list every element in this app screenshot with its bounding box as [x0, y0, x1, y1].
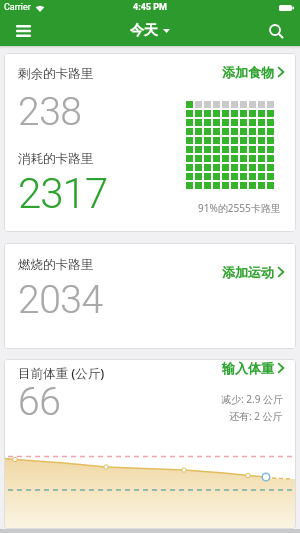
staticText: 今天	[130, 22, 158, 40]
button[interactable]	[266, 21, 286, 41]
staticText: 减少: 2.9 公斤	[221, 392, 283, 406]
button[interactable]: 今天	[130, 22, 170, 40]
staticText: 66	[18, 379, 61, 425]
staticText: 2317	[18, 169, 108, 218]
staticText: 燃烧的卡路里	[18, 257, 93, 273]
button[interactable]: 添加运动	[222, 264, 284, 280]
staticText: 添加食物	[222, 64, 274, 80]
staticText: 还有: 2 公斤	[229, 409, 283, 423]
staticText: 添加运动	[222, 264, 274, 280]
staticText: 2034	[18, 277, 103, 323]
staticText: 目前体重 (公斤)	[18, 365, 105, 382]
staticText: 238	[18, 89, 82, 135]
staticText: 消耗的卡路里	[18, 151, 93, 167]
staticText: 4:45 PM	[133, 2, 167, 13]
staticText: 输入体重	[222, 360, 274, 376]
button[interactable]: 输入体重	[222, 360, 284, 376]
staticText: Carrier	[4, 2, 31, 13]
button[interactable]: 添加食物	[222, 64, 284, 80]
staticText: 剩余的卡路里	[18, 66, 93, 82]
staticText: 91%的2555卡路里	[198, 201, 281, 215]
button[interactable]	[10, 18, 36, 44]
